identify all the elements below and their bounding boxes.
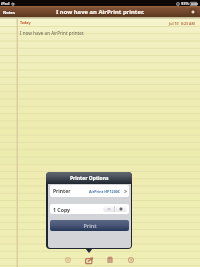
staticText: I now have an AirPrint printer. [56,8,145,16]
staticText: I now have an AirPrint printer. [20,30,85,36]
button[interactable]: Print [50,220,129,231]
staticText: Print [83,222,97,229]
staticText: Today [20,20,31,25]
button[interactable]: Next note [126,255,136,265]
button[interactable]: Notes [2,9,15,15]
button[interactable]: Decrease copies [103,206,114,212]
staticText: Printer Options [70,175,109,182]
staticText: Notes [3,10,15,15]
button[interactable]: Previous note [63,255,73,265]
staticText: AirPrint HP1200C [89,189,121,194]
button[interactable]: Delete [105,254,115,264]
button[interactable]: Increase copies [115,206,127,212]
staticText: 93% [181,1,189,6]
staticText: iPad [1,1,10,6]
button[interactable]: Add note [189,8,197,15]
staticText: Printer [53,188,71,195]
button[interactable]: Printer [50,185,129,197]
button[interactable]: Share [84,255,94,265]
staticText: 1 Copy [53,206,71,213]
staticText: Jul 10 8:23 AM [169,21,195,26]
